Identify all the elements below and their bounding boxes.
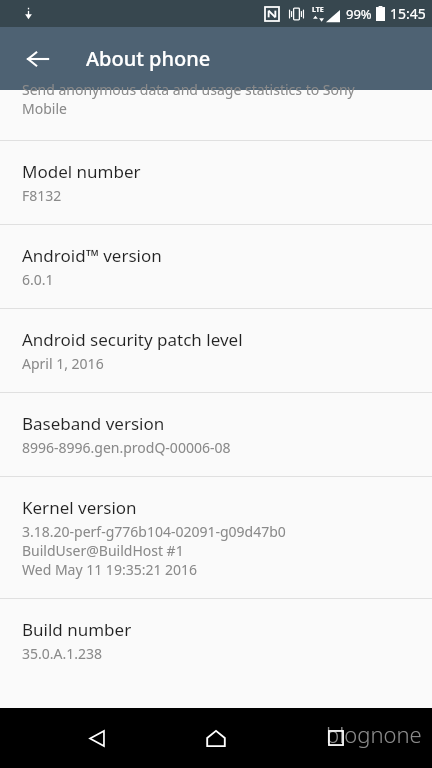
staticText: F8132 — [22, 186, 62, 205]
staticText: 8996-8996.gen.prodQ-00006-08 — [22, 438, 231, 457]
staticText: Build number — [22, 618, 132, 641]
staticText: Baseband version — [22, 412, 165, 435]
button[interactable]: Android security patch level — [0, 309, 432, 392]
staticText: 35.0.A.1.238 — [22, 644, 103, 663]
staticText: blognone — [326, 719, 422, 749]
button[interactable]: Back — [14, 35, 62, 83]
button[interactable]: Kernel version — [0, 477, 432, 598]
button[interactable]: Recent apps — [312, 714, 360, 762]
staticText: About phone — [86, 45, 211, 72]
staticText: Kernel version — [22, 496, 137, 519]
staticText: 15:45 — [390, 4, 426, 23]
button[interactable]: Home — [192, 714, 240, 762]
button[interactable]: Build number — [0, 599, 432, 682]
staticText: Android security patch level — [22, 328, 243, 351]
staticText: Model number — [22, 160, 141, 183]
button[interactable]: Model number — [0, 141, 432, 224]
staticText: Android™ version — [22, 244, 162, 267]
staticText: April 1, 2016 — [22, 354, 104, 373]
staticText: 6.0.1 — [22, 270, 54, 289]
button[interactable]: Back — [73, 714, 121, 762]
staticText: Mobile — [22, 99, 67, 118]
button[interactable]: Baseband version — [0, 393, 432, 476]
staticText: 3.18.20-perf-g776b104-02091-g09d47b0 — [22, 522, 286, 541]
staticText: Send anonymous data and usage statistics… — [22, 80, 355, 99]
button[interactable]: Android™ version — [0, 225, 432, 308]
staticText: 99% — [346, 5, 372, 23]
staticText: LTE — [312, 5, 324, 15]
staticText: BuildUser@BuildHost #1 — [22, 541, 184, 560]
staticText: Wed May 11 19:35:21 2016 — [22, 560, 198, 579]
button[interactable]: Send anonymous data and usage statistics… — [0, 90, 432, 140]
